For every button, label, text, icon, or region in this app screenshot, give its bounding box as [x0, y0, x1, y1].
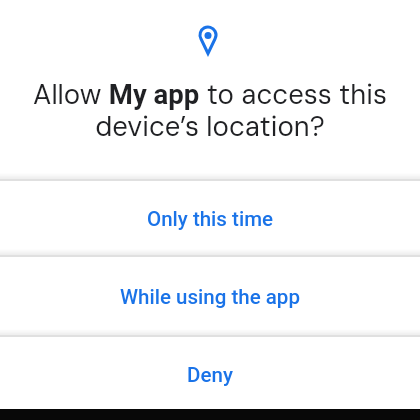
button[interactable]: While using the app [0, 258, 420, 336]
staticText: Allow My app to access this device’s loc… [33, 77, 387, 144]
button[interactable]: Deny [0, 338, 420, 411]
staticText: While using the app [120, 285, 300, 309]
staticText: Only this time [147, 207, 273, 231]
staticText: Deny [187, 363, 233, 387]
button[interactable]: Only this time [0, 181, 420, 256]
